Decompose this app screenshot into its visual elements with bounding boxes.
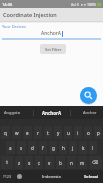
button[interactable]: AnchorA (42, 110, 62, 116)
button[interactable] (80, 87, 97, 104)
staticText: 14:06 (2, 2, 13, 7)
staticText: j (72, 145, 74, 151)
staticText: a (9, 145, 12, 151)
button[interactable]: l (89, 141, 97, 154)
staticText: q (4, 130, 7, 136)
staticText: m (80, 160, 85, 166)
button[interactable]: s (17, 141, 26, 154)
button[interactable]: m (78, 156, 87, 169)
button[interactable]: g (49, 141, 57, 154)
staticText: g (52, 145, 55, 151)
button[interactable]: r (34, 126, 42, 139)
staticText: p (97, 130, 100, 136)
staticText: ⌫ (92, 160, 99, 165)
staticText: w (15, 130, 19, 136)
button[interactable]: t (44, 126, 52, 139)
staticText: x (28, 160, 31, 166)
button[interactable]: x (25, 156, 33, 169)
staticText: AnchorA (41, 30, 62, 37)
button[interactable]: z (15, 156, 23, 169)
staticText: e (26, 130, 29, 136)
staticText: k (82, 145, 85, 151)
button[interactable]: ⇧ (1, 156, 13, 169)
button[interactable]: q (1, 126, 10, 139)
staticText: h (62, 145, 65, 151)
button[interactable] (17, 174, 22, 179)
button[interactable]: Selesai (84, 174, 99, 180)
button[interactable]: ⌫ (89, 156, 102, 169)
button[interactable]: h (59, 141, 67, 154)
button[interactable]: u (64, 126, 72, 139)
button[interactable]: v (45, 156, 54, 169)
staticText: Coordinate Injection (3, 11, 57, 18)
staticText: Your Devices (2, 24, 26, 29)
button[interactable]: w (12, 126, 21, 139)
staticText: v (48, 160, 51, 166)
button[interactable]: AnchorA (0, 28, 103, 38)
button[interactable]: e (23, 126, 32, 139)
staticText: f (42, 145, 44, 151)
staticText: Avl 0 (71, 2, 79, 7)
button[interactable]: o (84, 126, 92, 139)
staticText: b (59, 160, 62, 166)
button[interactable]: f (39, 141, 47, 154)
button[interactable]: p (94, 126, 102, 139)
staticText: r (37, 130, 39, 136)
button[interactable]: i (74, 126, 82, 139)
button[interactable]: n (67, 156, 76, 169)
staticText: z (18, 160, 21, 166)
button[interactable]: d (28, 141, 37, 154)
staticText: o (87, 130, 90, 136)
staticText: l (92, 145, 94, 151)
staticText: d (31, 145, 34, 151)
staticText: t (47, 130, 49, 136)
button[interactable]: j (69, 141, 77, 154)
staticText: c (38, 160, 41, 166)
button[interactable]: y (54, 126, 62, 139)
staticText: i (77, 130, 79, 136)
staticText: Set Filter (45, 47, 62, 52)
staticText: s (20, 145, 23, 151)
button[interactable]: a (6, 141, 15, 154)
button[interactable]: ?123 (3, 174, 12, 179)
staticText: u (67, 130, 70, 136)
button[interactable]: b (56, 156, 65, 169)
staticText: 100% (87, 2, 96, 7)
button[interactable]: Anggota (4, 110, 21, 115)
button[interactable]: Anchor (83, 110, 97, 115)
button[interactable]: k (79, 141, 87, 154)
button[interactable]: c (35, 156, 43, 169)
staticText: ▾ (81, 3, 83, 7)
button[interactable]: Set Filter (40, 44, 66, 54)
button[interactable]: Indonesia (42, 174, 61, 179)
staticText: n (70, 160, 73, 166)
staticText: ▾ (84, 3, 86, 7)
staticText: ⇧ (5, 160, 9, 165)
staticText: y (57, 130, 60, 136)
